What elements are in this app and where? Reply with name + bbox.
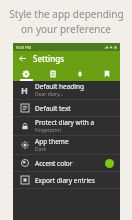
staticText: Dark	[35, 146, 47, 153]
button[interactable]: Entries	[39, 66, 66, 81]
staticText: Default text	[35, 104, 71, 113]
button[interactable]: H	[13, 81, 120, 99]
staticText: Settings	[33, 53, 65, 64]
staticText: Default heading	[35, 82, 85, 91]
button[interactable]: Bookmarks	[93, 66, 120, 81]
staticText: App theme	[35, 137, 69, 146]
button[interactable]: App theme	[13, 136, 120, 154]
staticText: Style the app depending	[9, 7, 124, 21]
button[interactable]: Export diary entries	[13, 172, 120, 188]
staticText: 9:00 PM	[16, 45, 32, 50]
button[interactable]: Default text	[13, 100, 120, 116]
staticText: Accent color	[35, 159, 73, 168]
staticText: Fingerprint	[35, 127, 62, 134]
button[interactable]: Reminders	[66, 66, 93, 81]
staticText: on your preference	[21, 22, 111, 36]
button[interactable]: Back	[16, 52, 29, 65]
button[interactable]: Protect diary with a password	[13, 117, 120, 135]
staticText: Dear diary...	[35, 91, 64, 98]
staticText: H	[21, 84, 28, 96]
staticText: Export diary entries	[35, 176, 95, 185]
button[interactable]: Appearance	[13, 66, 39, 81]
staticText: Protect diary with a password	[35, 118, 116, 127]
button[interactable]: Accent color	[13, 155, 120, 171]
